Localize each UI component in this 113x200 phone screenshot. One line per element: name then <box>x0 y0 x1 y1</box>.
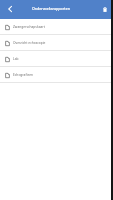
button[interactable]: Delete <box>99 4 111 16</box>
button[interactable]: Zwangerschapskaart <box>0 19 113 35</box>
button[interactable]: Lab <box>0 51 113 67</box>
button[interactable]: Echografieen <box>0 67 113 83</box>
staticText: Zwangerschapskaart <box>13 25 45 29</box>
button[interactable]: Overzicht echoscopie <box>0 35 113 51</box>
staticText: Echografieen <box>13 73 34 77</box>
staticText: Onderzoeksrapporten <box>32 6 70 11</box>
staticText: Overzicht echoscopie <box>13 41 46 45</box>
staticText: Lab <box>13 57 19 61</box>
button[interactable]: Back <box>0 0 19 19</box>
